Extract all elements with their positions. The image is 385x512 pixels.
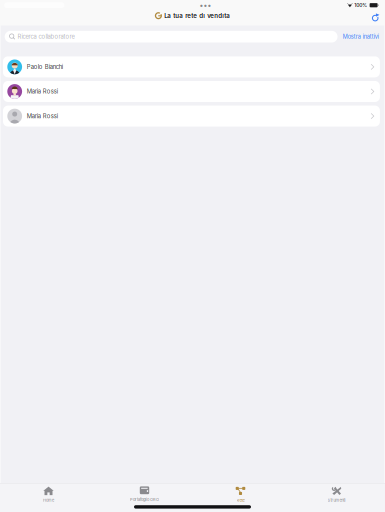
button[interactable]: Maria Rossi xyxy=(3,106,380,127)
staticText: Maria Rossi xyxy=(27,88,58,95)
staticText: Mostra inattivi xyxy=(343,33,379,40)
staticText: Rete xyxy=(236,498,244,503)
staticText: Home xyxy=(43,498,54,503)
button[interactable]: Strumenti xyxy=(288,484,384,505)
staticText: Ricerca collaboratore xyxy=(17,33,74,40)
button[interactable]: Mostra inattivi xyxy=(337,30,385,43)
button[interactable]: Refresh xyxy=(365,11,385,24)
staticText: Paolo Bianchi xyxy=(27,63,63,70)
button[interactable]: Portafoglio ORO xyxy=(96,484,192,505)
staticText: Strumenti xyxy=(327,498,345,503)
button[interactable]: Home xyxy=(0,484,96,505)
staticText: 100% xyxy=(354,2,367,8)
button[interactable]: Paolo Bianchi xyxy=(3,56,380,77)
button[interactable]: Rete xyxy=(192,484,288,505)
staticText: Portafoglio ORO xyxy=(130,497,159,502)
button[interactable]: Maria Rossi xyxy=(3,81,380,102)
staticText: Maria Rossi xyxy=(27,112,58,120)
staticText: ••• xyxy=(200,1,212,10)
staticText: La tua rete di vendita xyxy=(164,12,230,19)
